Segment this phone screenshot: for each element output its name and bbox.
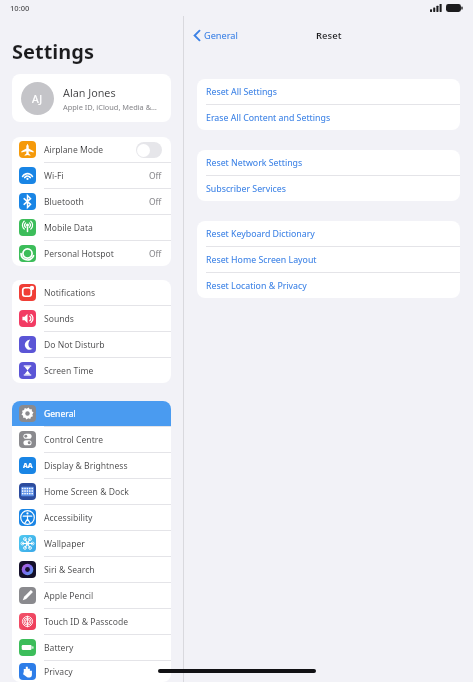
button[interactable]: Airplane Mode <box>12 137 171 162</box>
button[interactable]: Reset Keyboard Dictionary <box>197 221 460 246</box>
staticText: Display & Brightness <box>44 460 162 472</box>
button[interactable]: Do Not Disturb <box>12 332 171 357</box>
staticText: Screen Time <box>44 365 162 377</box>
staticText: Home Screen & Dock <box>44 486 162 498</box>
staticText: AJ <box>32 92 43 106</box>
staticText: Reset Location & Privacy <box>206 280 307 292</box>
button[interactable]: Touch ID & Passcode <box>12 609 171 634</box>
staticText: Settings <box>12 38 94 65</box>
button[interactable]: Erase All Content and Settings <box>197 105 460 130</box>
staticText: 10:00 <box>10 3 30 13</box>
staticText: Subscriber Services <box>206 183 286 195</box>
button[interactable]: Reset Network Settings <box>197 150 460 175</box>
button[interactable]: Notifications <box>12 280 171 305</box>
staticText: Personal Hotspot <box>44 248 149 260</box>
staticText: Alan Jones <box>63 85 116 100</box>
button[interactable]: Privacy <box>12 661 171 682</box>
button[interactable]: Control Centre <box>12 427 171 452</box>
button[interactable]: Bluetooth <box>12 189 171 214</box>
button[interactable]: General <box>191 26 241 45</box>
staticText: Reset <box>316 29 342 42</box>
button[interactable]: Reset Home Screen Layout <box>197 247 460 272</box>
staticText: Accessibility <box>44 512 162 524</box>
staticText: Apple ID, iCloud, Media &… <box>63 102 157 112</box>
staticText: Off <box>149 170 162 181</box>
staticText: Privacy <box>44 666 162 678</box>
button[interactable]: Wi-Fi <box>12 163 171 188</box>
staticText: Reset Network Settings <box>206 157 303 169</box>
staticText: Apple Pencil <box>44 590 162 602</box>
staticText: Control Centre <box>44 434 162 446</box>
button[interactable]: Home Screen & Dock <box>12 479 171 504</box>
staticText: Reset Keyboard Dictionary <box>206 228 315 240</box>
button[interactable]: AA <box>12 453 171 478</box>
staticText: Do Not Disturb <box>44 339 162 351</box>
staticText: AA <box>23 461 33 471</box>
staticText: Off <box>149 248 162 259</box>
button[interactable]: Siri & Search <box>12 557 171 582</box>
staticText: Notifications <box>44 287 162 299</box>
staticText: Wallpaper <box>44 538 162 550</box>
staticText: General <box>204 29 238 42</box>
button[interactable]: Airplane Mode toggle <box>136 142 162 158</box>
staticText: General <box>44 408 162 420</box>
staticText: Bluetooth <box>44 196 149 208</box>
staticText: Siri & Search <box>44 564 162 576</box>
staticText: Touch ID & Passcode <box>44 616 162 628</box>
staticText: Reset All Settings <box>206 86 277 98</box>
staticText: Reset Home Screen Layout <box>206 254 317 266</box>
button[interactable]: Battery <box>12 635 171 660</box>
staticText: Erase All Content and Settings <box>206 112 331 124</box>
button[interactable]: Personal Hotspot <box>12 241 171 266</box>
button[interactable]: Reset All Settings <box>197 79 460 104</box>
button[interactable]: AJ <box>12 74 171 122</box>
button[interactable]: General <box>12 401 171 426</box>
staticText: Wi-Fi <box>44 170 149 182</box>
staticText: Off <box>149 196 162 207</box>
staticText: Sounds <box>44 313 162 325</box>
button[interactable]: Mobile Data <box>12 215 171 240</box>
staticText: Airplane Mode <box>44 144 136 156</box>
button[interactable]: Apple Pencil <box>12 583 171 608</box>
button[interactable]: Accessibility <box>12 505 171 530</box>
button[interactable]: Screen Time <box>12 358 171 383</box>
button[interactable]: Subscriber Services <box>197 176 460 201</box>
staticText: Battery <box>44 642 162 654</box>
staticText: Mobile Data <box>44 222 162 234</box>
button[interactable]: Wallpaper <box>12 531 171 556</box>
button[interactable]: Sounds <box>12 306 171 331</box>
button[interactable]: Reset Location & Privacy <box>197 273 460 298</box>
